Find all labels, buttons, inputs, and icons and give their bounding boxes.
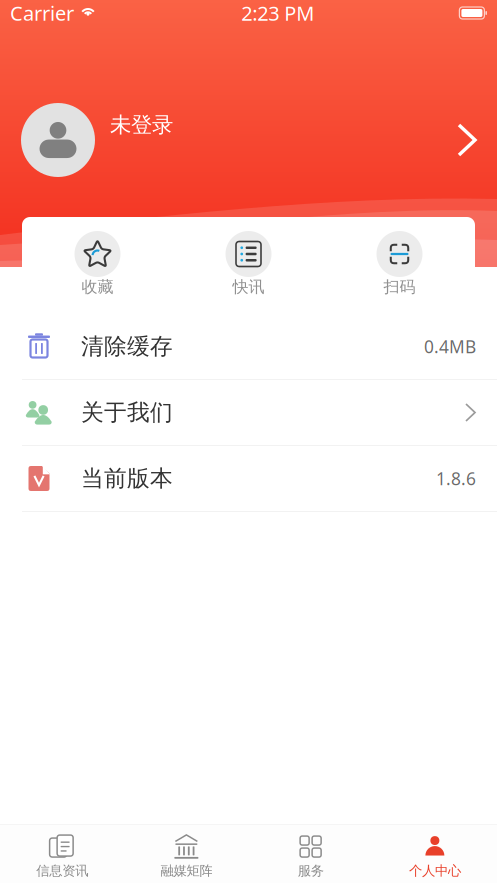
button[interactable]: 服务 bbox=[248, 829, 373, 879]
staticText: 服务 bbox=[298, 863, 324, 879]
button[interactable]: 个人中心 bbox=[373, 829, 497, 879]
staticText: 未登录 bbox=[110, 112, 173, 138]
button[interactable]: 未登录 bbox=[0, 98, 497, 182]
staticText: 扫码 bbox=[383, 277, 415, 297]
button[interactable]: 信息资讯 bbox=[0, 829, 124, 879]
staticText: 快讯 bbox=[232, 277, 264, 297]
staticText: 0.4MB bbox=[424, 335, 476, 358]
staticText: 个人中心 bbox=[409, 863, 461, 879]
button[interactable]: 当前版本 bbox=[0, 446, 497, 512]
button[interactable]: 清除缓存 bbox=[0, 314, 497, 380]
staticText: 关于我们 bbox=[81, 399, 173, 426]
staticText: 清除缓存 bbox=[81, 333, 173, 360]
staticText: 融媒矩阵 bbox=[160, 863, 212, 879]
button[interactable]: 扫码 bbox=[324, 231, 475, 297]
staticText: 1.8.6 bbox=[436, 467, 476, 490]
staticText: 2:23 PM bbox=[241, 0, 314, 26]
staticText: Carrier bbox=[10, 0, 74, 26]
staticText: 当前版本 bbox=[81, 465, 173, 492]
button[interactable]: 融媒矩阵 bbox=[124, 829, 248, 879]
staticText: 信息资讯 bbox=[36, 863, 88, 879]
button[interactable]: 关于我们 bbox=[0, 380, 497, 446]
staticText: 收藏 bbox=[81, 277, 113, 297]
button[interactable]: 收藏 bbox=[22, 231, 173, 297]
button[interactable]: 快讯 bbox=[173, 231, 324, 297]
